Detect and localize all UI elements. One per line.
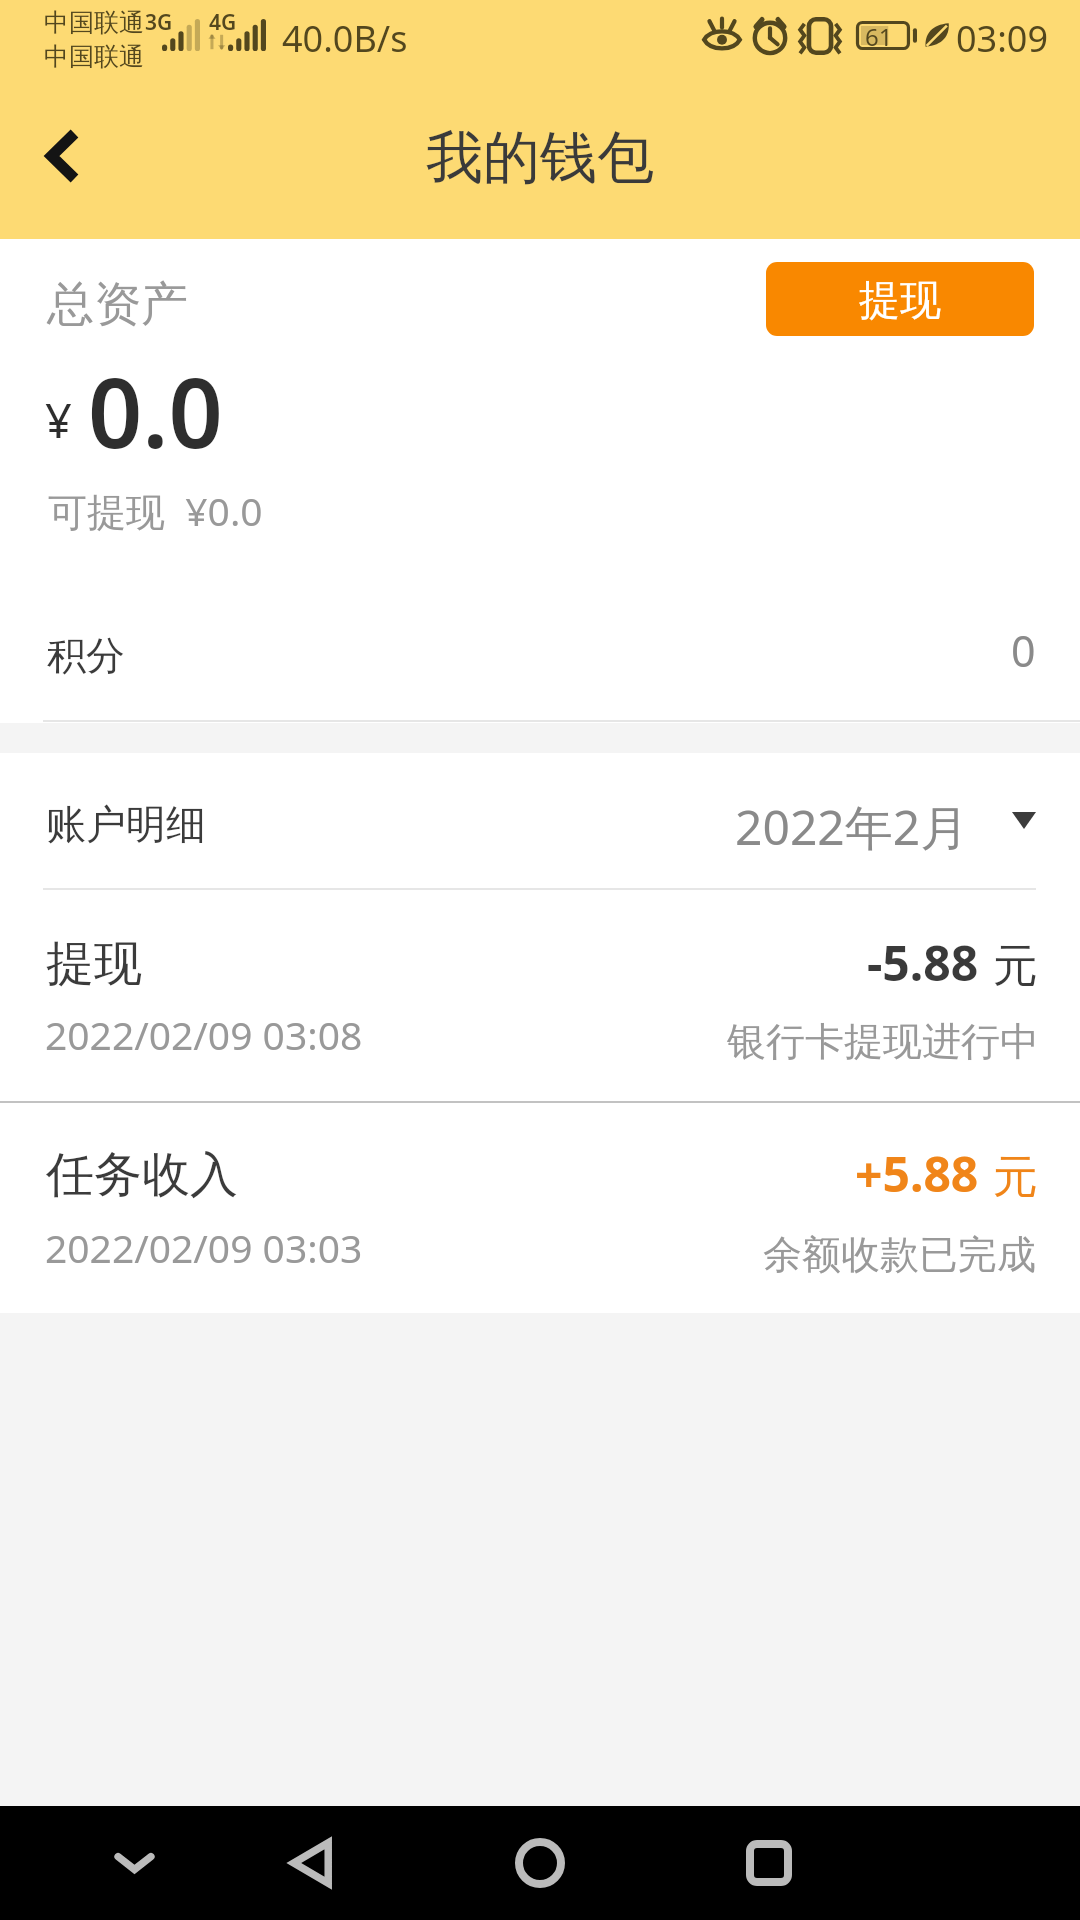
staticText: 3G <box>145 8 173 37</box>
staticText: 元 <box>993 1149 1038 1206</box>
staticText: 0.0 <box>88 346 223 475</box>
staticText: 61 <box>865 20 893 53</box>
button[interactable]: Home <box>485 1808 595 1918</box>
staticText: 余额收款已完成 <box>763 1230 1036 1279</box>
staticText: +5.88 <box>855 1141 979 1206</box>
staticText: 账户明细 <box>46 799 206 849</box>
staticText: 03:09 <box>956 14 1049 63</box>
staticText: 2022/02/09 03:03 <box>45 1221 363 1274</box>
button[interactable]: Recent apps <box>714 1808 824 1918</box>
staticText: 总资产 <box>47 275 188 334</box>
staticText: 提现 <box>859 275 941 327</box>
staticText: 提现 <box>46 934 142 994</box>
staticText: 中国联通 <box>44 7 144 38</box>
staticText: 我的钱包 <box>426 122 654 194</box>
staticText: 0 <box>1011 621 1036 680</box>
staticText: 2022/02/09 03:08 <box>45 1008 363 1061</box>
staticText: 2022年2月 <box>735 794 969 860</box>
staticText: 可提现 ¥0.0 <box>48 484 263 537</box>
staticText: ¥ <box>45 388 72 452</box>
staticText: 中国联通 <box>44 41 144 72</box>
button[interactable]: 提现 <box>766 262 1034 336</box>
staticText: 40.0B/s <box>282 14 408 63</box>
button[interactable]: 提现 <box>0 890 1080 1101</box>
button[interactable]: 任务收入 <box>0 1103 1080 1314</box>
staticText: -5.88 <box>867 930 979 995</box>
staticText: 积分 <box>47 631 125 680</box>
button[interactable]: 账户明细 <box>0 753 1080 889</box>
staticText: 银行卡提现进行中 <box>727 1017 1039 1066</box>
staticText: 元 <box>993 938 1038 995</box>
button[interactable]: Hide keyboard <box>79 1808 189 1918</box>
button[interactable]: Back <box>8 101 118 211</box>
button[interactable]: Back <box>256 1808 366 1918</box>
staticText: 任务收入 <box>46 1145 238 1205</box>
staticText: 4G <box>209 8 237 37</box>
